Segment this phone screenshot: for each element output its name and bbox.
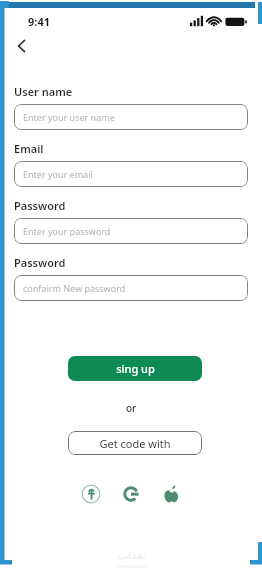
button[interactable]: Sign in with Facebook xyxy=(80,483,102,505)
staticText: Password xyxy=(14,255,66,270)
button[interactable]: Back xyxy=(10,34,34,58)
button[interactable]: sing up xyxy=(68,356,202,381)
staticText: Enter your email xyxy=(23,168,93,180)
staticText: 9:41 xyxy=(28,14,50,29)
button[interactable]: Enter your password xyxy=(14,218,248,244)
button[interactable]: Enter your email xyxy=(14,161,248,187)
staticText: or xyxy=(126,401,137,415)
button[interactable]: confairm New password xyxy=(14,275,248,301)
button[interactable]: Enter your user name xyxy=(14,104,248,130)
staticText: Get code with xyxy=(99,436,171,451)
staticText: confairm New password xyxy=(23,282,126,294)
button[interactable]: Get code with xyxy=(68,431,202,455)
staticText: Email xyxy=(14,141,44,156)
staticText: figma.com xyxy=(116,562,147,570)
staticText: نقذلپ xyxy=(117,549,146,562)
staticText: Enter your user name xyxy=(23,111,115,123)
staticText: Enter your password xyxy=(23,225,111,237)
button[interactable]: Sign in with Apple xyxy=(160,483,182,505)
staticText: User name xyxy=(14,84,73,99)
button[interactable]: Sign in with Google xyxy=(120,483,142,505)
staticText: Password xyxy=(14,198,66,213)
staticText: sing up xyxy=(116,361,155,376)
